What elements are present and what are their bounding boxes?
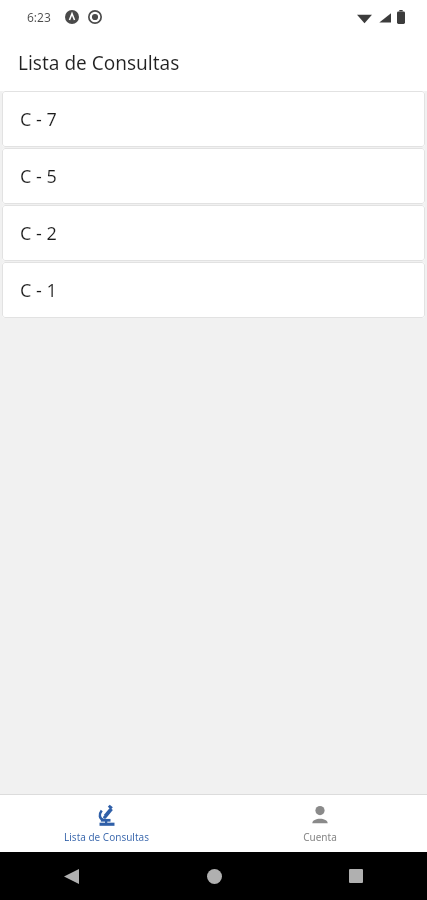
other: Lista de Consultas <box>96 804 118 826</box>
other: Recents <box>349 869 363 883</box>
staticText: C - 2 <box>20 221 57 246</box>
button[interactable]: C - 2 <box>2 205 425 261</box>
button[interactable]: C - 1 <box>2 262 425 318</box>
staticText: Lista de Consultas <box>18 50 180 76</box>
button[interactable]: C - 7 <box>2 91 425 147</box>
staticText: C - 7 <box>20 107 57 132</box>
other: Back <box>64 869 79 884</box>
staticText: Cuenta <box>303 830 337 844</box>
other: Cuenta <box>309 804 331 826</box>
button[interactable]: Cuenta <box>213 795 427 852</box>
staticText: C - 1 <box>20 278 57 303</box>
staticText: C - 5 <box>20 164 57 189</box>
staticText: Lista de Consultas <box>64 830 149 844</box>
other: Home <box>207 869 222 884</box>
button[interactable]: Lista de Consultas <box>0 795 213 852</box>
staticText: 6:23 <box>27 9 51 25</box>
button[interactable]: C - 5 <box>2 148 425 204</box>
